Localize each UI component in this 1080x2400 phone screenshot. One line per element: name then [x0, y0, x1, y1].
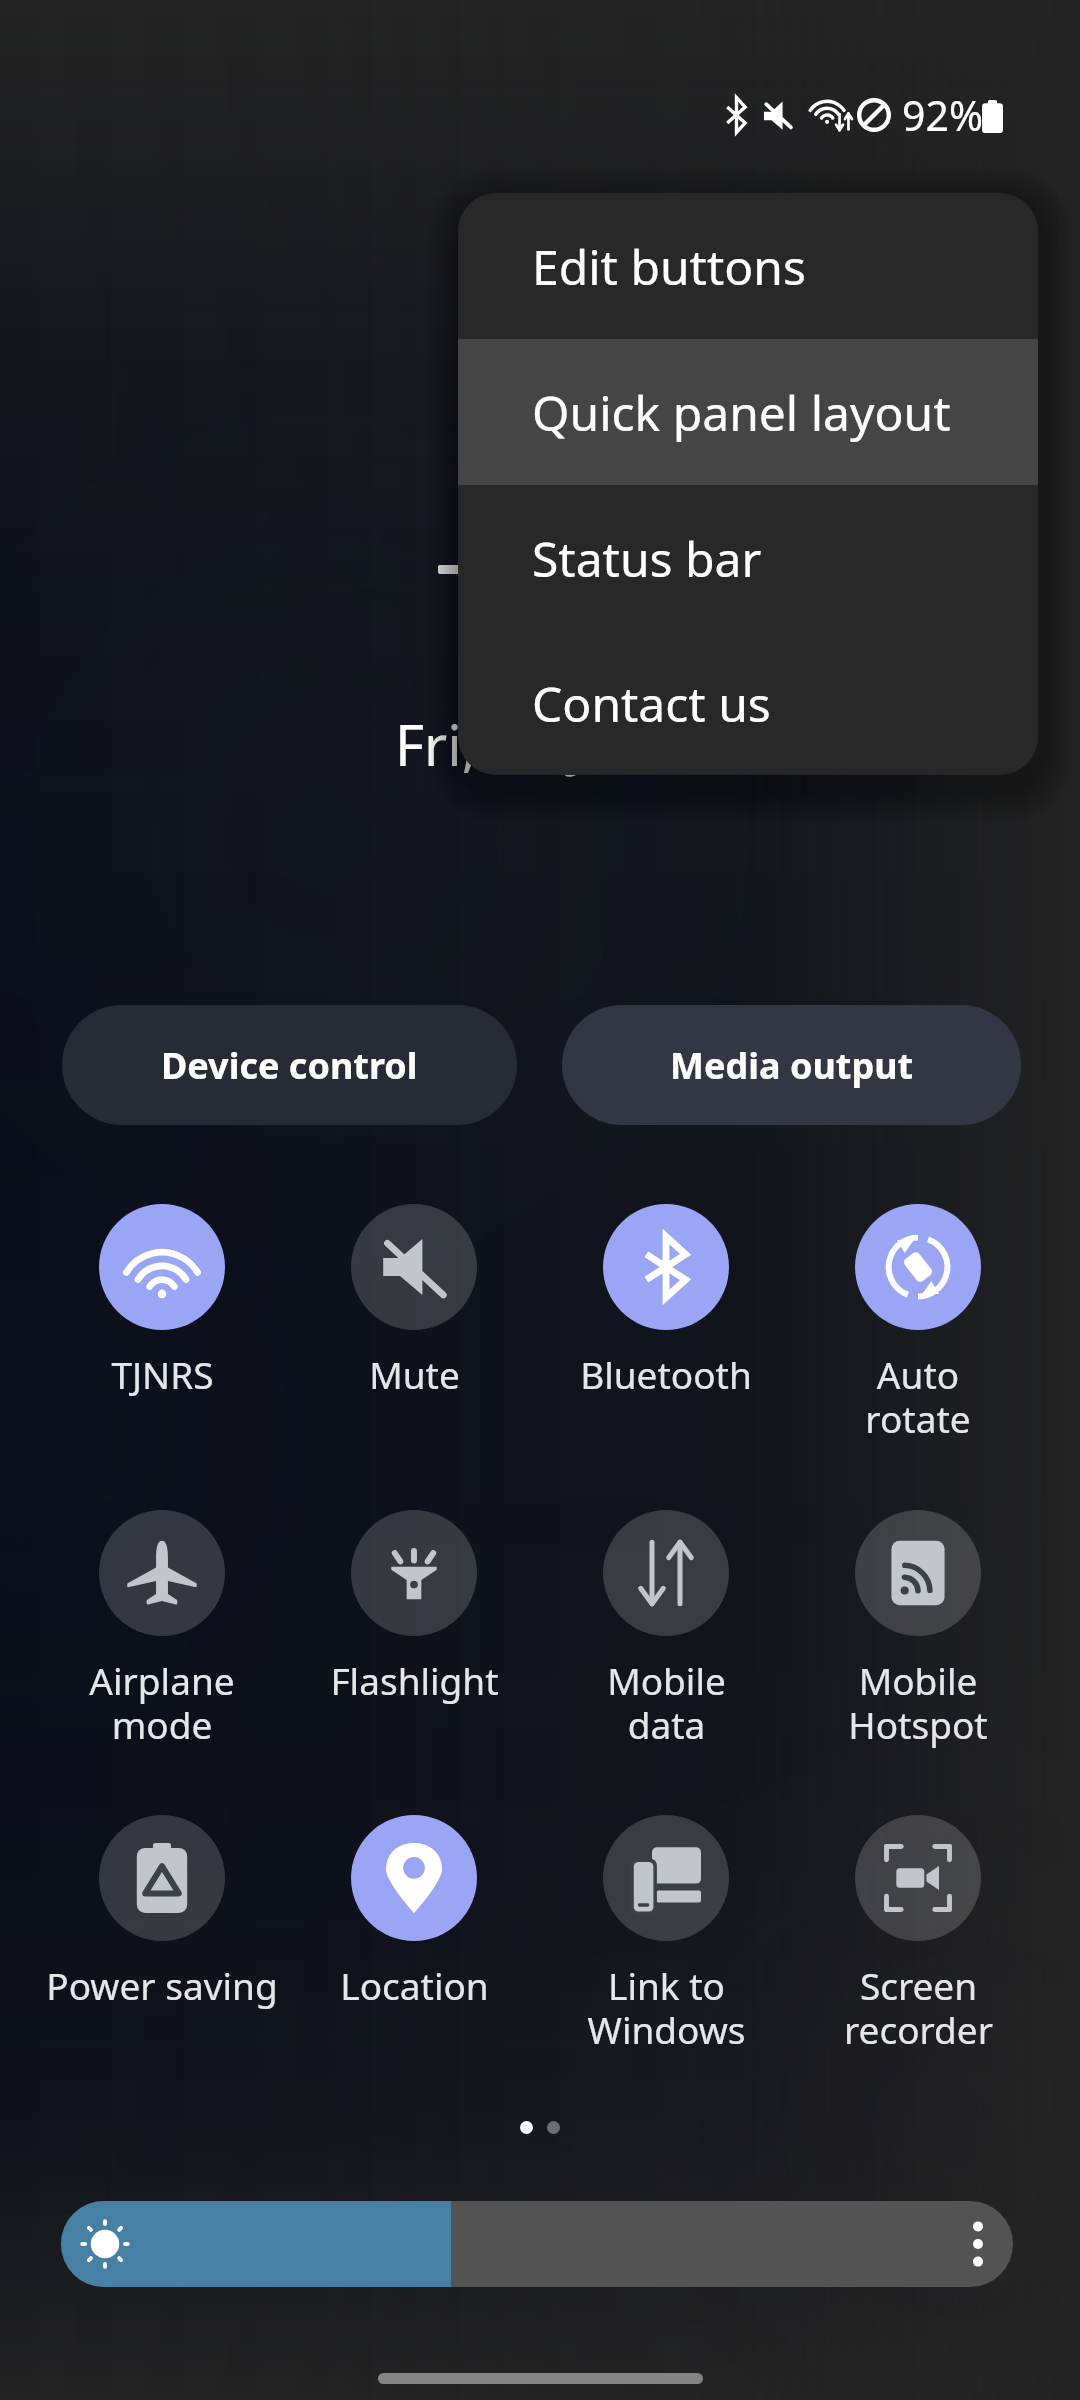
staticText: Mute: [369, 1349, 460, 1399]
staticText: Media output: [670, 1041, 914, 1090]
button[interactable]: Link to Windows: [540, 1815, 792, 2055]
button[interactable]: Location: [288, 1815, 540, 2010]
button[interactable]: Airplane mode: [36, 1510, 288, 1750]
button[interactable]: Media output: [562, 1005, 1021, 1125]
button[interactable]: TJNRS: [36, 1204, 288, 1399]
button[interactable]: Status bar: [458, 485, 1038, 631]
staticText: Location: [340, 1960, 489, 2010]
staticText: Device control: [161, 1041, 418, 1090]
button[interactable]: More options: [61, 2201, 1013, 2287]
button[interactable]: Edit buttons: [458, 193, 1038, 339]
other: More options: [973, 2222, 983, 2266]
staticText: Mobile Hotspot: [848, 1655, 988, 1750]
button[interactable]: Auto rotate: [792, 1204, 1044, 1444]
staticText: Quick panel layout: [532, 380, 951, 445]
staticText: Flashlight: [330, 1655, 499, 1705]
staticText: Power saving: [46, 1960, 278, 2010]
staticText: TJNRS: [111, 1349, 214, 1399]
button[interactable]: Bluetooth: [540, 1204, 792, 1399]
button[interactable]: Mobile Hotspot: [792, 1510, 1044, 1750]
button[interactable]: Mute: [288, 1204, 540, 1399]
button[interactable]: Device control: [62, 1005, 517, 1125]
staticText: Screen recorder: [844, 1960, 993, 2055]
staticText: Fri, 14 June: [395, 706, 686, 782]
staticText: Auto rotate: [865, 1349, 971, 1444]
staticText: Airplane mode: [89, 1655, 235, 1750]
staticText: 92%: [902, 87, 983, 143]
staticText: Edit buttons: [532, 234, 806, 299]
staticText: Bluetooth: [580, 1349, 752, 1399]
button[interactable]: Power saving: [36, 1815, 288, 2010]
button[interactable]: Quick panel layout: [458, 339, 1038, 485]
button[interactable]: Mobile data: [540, 1510, 792, 1750]
button[interactable]: Contact us: [458, 631, 1038, 775]
staticText: Status bar: [532, 526, 762, 591]
staticText: Link to Windows: [587, 1960, 746, 2055]
button[interactable]: Screen recorder: [792, 1815, 1044, 2055]
staticText: Contact us: [532, 671, 771, 736]
button[interactable]: Flashlight: [288, 1510, 540, 1705]
staticText: Mobile data: [607, 1655, 726, 1750]
